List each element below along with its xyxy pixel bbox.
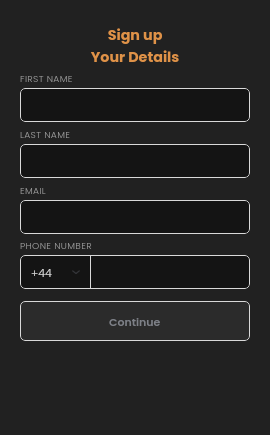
button[interactable]: Continue (20, 301, 250, 341)
button[interactable]: Select country dialling code (20, 255, 90, 289)
staticText: LAST NAME (20, 128, 71, 141)
staticText: PHONE NUMBER (20, 239, 92, 252)
staticText: FIRST NAME (20, 72, 73, 85)
staticText: Sign up (0, 25, 270, 45)
button[interactable]: Email (20, 200, 250, 234)
button[interactable]: First name (20, 88, 250, 122)
button[interactable]: Last name (20, 144, 250, 178)
staticText: +44 (31, 265, 52, 280)
button[interactable]: Phone number (91, 255, 250, 289)
staticText: Your Details (0, 47, 270, 67)
staticText: Continue (109, 314, 161, 329)
staticText: EMAIL (20, 184, 47, 197)
